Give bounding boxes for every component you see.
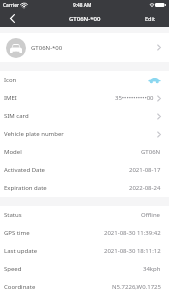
button[interactable]: Icon	[0, 71, 169, 89]
button[interactable]: Expiration date	[0, 179, 169, 197]
staticText: N5.7226,W0.1725	[112, 283, 161, 291]
staticText: SIM card	[4, 112, 29, 120]
button[interactable]: Coordinate	[0, 278, 169, 296]
staticText: GT06N-*00	[69, 15, 101, 23]
staticText: Icon	[4, 76, 17, 84]
staticText: Last update	[4, 247, 38, 255]
staticText: GT06N-*00	[31, 44, 63, 52]
staticText: 34kph	[143, 265, 161, 273]
staticText: 2022-08-24	[129, 184, 161, 192]
button[interactable]: IMEI	[0, 89, 169, 107]
staticText: 9:48 AM	[73, 2, 92, 9]
button[interactable]: Vehicle plate number	[0, 125, 169, 143]
button[interactable]: GPS time	[0, 224, 169, 242]
staticText: Carrier	[3, 2, 19, 9]
button[interactable]: Speed	[0, 260, 169, 278]
staticText: 2021-08-30 18:11:12	[104, 247, 161, 255]
button[interactable]: Last update	[0, 242, 169, 260]
staticText: Activated Date	[4, 166, 45, 174]
staticText: Offline	[141, 211, 161, 219]
staticText: IMEI	[4, 94, 17, 102]
staticText: Status	[4, 211, 22, 219]
staticText: Model	[4, 148, 22, 156]
button[interactable]: Edit	[139, 12, 169, 27]
staticText: Expiration date	[4, 184, 47, 192]
staticText: 35•••••••••••00	[115, 94, 154, 102]
staticText: GT06N	[141, 148, 161, 156]
staticText: Coordinate	[4, 283, 36, 291]
button[interactable]: Status	[0, 206, 169, 224]
button[interactable]: GT06N-*00	[0, 33, 169, 62]
button[interactable]: Activated Date	[0, 161, 169, 179]
staticText: Speed	[4, 265, 22, 273]
button[interactable]: Back	[0, 12, 19, 27]
staticText: GPS time	[4, 229, 30, 237]
staticText: 2021-08-30 11:39:42	[104, 229, 161, 237]
button[interactable]: Model	[0, 143, 169, 161]
button[interactable]: SIM card	[0, 107, 169, 125]
staticText: 2021-08-17	[129, 166, 161, 174]
staticText: Vehicle plate number	[4, 130, 64, 138]
staticText: Edit	[145, 15, 156, 23]
